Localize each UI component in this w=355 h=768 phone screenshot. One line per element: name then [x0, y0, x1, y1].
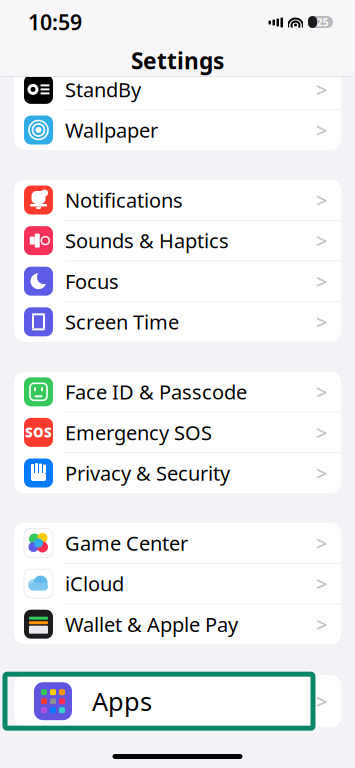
staticText: > — [316, 308, 327, 335]
button[interactable]: Apps — [0, 675, 355, 727]
staticText: Wallet & Apple Pay — [65, 611, 238, 637]
staticText: StandBy — [65, 76, 141, 103]
staticText: > — [316, 688, 327, 714]
staticText: Screen Time — [65, 308, 179, 335]
staticText: Settings — [131, 45, 224, 75]
button[interactable]: Screen Time — [14, 302, 341, 342]
staticText: Focus — [65, 268, 119, 294]
staticText: Face ID & Passcode — [65, 378, 247, 405]
button[interactable]: SOS — [14, 412, 341, 453]
staticText: 25 — [316, 15, 328, 29]
staticText: Apps — [92, 684, 152, 718]
staticText: > — [316, 530, 327, 556]
staticText: Notifications — [65, 187, 183, 213]
staticText: Game Center — [65, 530, 188, 556]
staticText: > — [316, 117, 327, 143]
staticText: Privacy & Security — [65, 460, 230, 486]
staticText: > — [316, 460, 327, 486]
staticText: > — [316, 378, 327, 405]
staticText: > — [316, 187, 327, 213]
button[interactable]: Privacy & Security — [14, 453, 341, 493]
staticText: > — [316, 227, 327, 254]
staticText: Sounds & Haptics — [65, 227, 229, 254]
button[interactable]: Notifications — [14, 180, 341, 221]
staticText: SOS — [25, 423, 52, 441]
staticText: > — [316, 76, 327, 103]
staticText: Wallpaper — [65, 117, 158, 143]
button[interactable]: StandBy — [14, 69, 341, 110]
staticText: > — [316, 570, 327, 597]
button[interactable]: Focus — [14, 261, 341, 302]
staticText: > — [316, 419, 327, 446]
staticText: iCloud — [65, 570, 124, 597]
staticText: 10:59 — [28, 8, 82, 36]
button[interactable]: iCloud — [14, 564, 341, 604]
button[interactable]: Face ID & Passcode — [14, 372, 341, 412]
button[interactable]: Wallpaper — [14, 110, 341, 150]
staticText: > — [316, 611, 327, 637]
staticText: > — [316, 268, 327, 294]
button[interactable]: Game Center — [14, 523, 341, 564]
button[interactable]: Wallet & Apple Pay — [14, 604, 341, 644]
staticText: Emergency SOS — [65, 419, 212, 446]
button[interactable]: Sounds & Haptics — [14, 221, 341, 261]
